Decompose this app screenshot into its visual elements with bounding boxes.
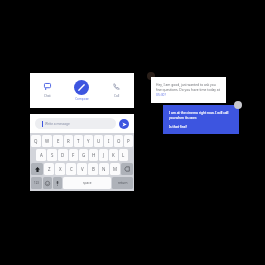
staticText: Z [48,166,51,172]
staticText: O [117,138,121,144]
button[interactable]: V [77,163,87,175]
staticText: V [81,166,84,172]
staticText: Call [114,94,120,98]
button[interactable]: 123 [31,177,42,189]
button[interactable]: Write a message [35,118,116,129]
button[interactable]: D [58,149,68,161]
button[interactable]: I [104,135,113,147]
staticText: 05:30? [156,92,166,96]
staticText: A [40,152,43,158]
button[interactable]: G [79,149,88,161]
staticText: Chat [44,94,51,98]
button[interactable]: W [42,135,52,147]
staticText: U [97,138,101,144]
staticText: R [67,138,70,144]
button[interactable]: M [110,163,120,175]
button[interactable]: R [64,135,73,147]
staticText: E [57,138,60,144]
staticText: Q [34,138,38,144]
staticText: B [92,166,95,172]
staticText: Hey, I am good, just wanted to ask you [156,82,216,86]
button[interactable]: Q [31,135,41,147]
staticText: I [108,138,110,144]
staticText: H [92,152,96,158]
staticText: you when its over. [169,115,197,119]
staticText: Compose [75,97,89,101]
button[interactable]: A [36,149,46,161]
button[interactable]: Send [119,119,129,129]
staticText: Is that fine? [169,124,187,128]
button[interactable]: Compose [64,73,99,108]
button[interactable]: Call [99,73,134,108]
button[interactable]: C [66,163,76,175]
button[interactable]: Y [84,135,93,147]
staticText: W [45,138,50,144]
button[interactable] [121,163,133,175]
button[interactable] [53,177,62,189]
button[interactable]: P [124,135,133,147]
button[interactable] [43,177,52,189]
staticText: few questions. Do you have time today at [156,87,220,91]
button[interactable]: N [99,163,109,175]
staticText: N [102,166,106,172]
staticText: Y [87,138,90,144]
staticText: F [72,152,75,158]
button[interactable]: B [88,163,98,175]
staticText: return [118,181,128,185]
button[interactable]: K [109,149,118,161]
button[interactable]: F [69,149,78,161]
button[interactable]: Hey, I am good, just wanted to ask you [151,77,226,103]
button[interactable]: return [112,177,133,189]
staticText: space [83,181,92,185]
other: Chat [44,83,51,90]
button[interactable]: I am at the cinema right now. I will cal… [163,105,239,134]
button[interactable]: Chat [30,73,64,108]
staticText: G [82,152,86,158]
staticText: I am at the cinema right now. I will cal… [169,110,229,114]
button[interactable]: L [119,149,128,161]
staticText: L [122,152,125,158]
staticText: X [59,166,62,172]
staticText: J [103,152,105,158]
staticText: D [61,152,65,158]
staticText: Write a message [45,122,70,126]
staticText: C [70,166,73,172]
staticText: K [112,152,115,158]
button[interactable]: X [55,163,65,175]
button[interactable]: T [74,135,83,147]
other: Call [113,83,120,90]
staticText: T [77,138,80,144]
staticText: P [127,138,130,144]
button[interactable]: O [114,135,123,147]
button[interactable]: H [89,149,98,161]
button[interactable]: U [94,135,103,147]
button[interactable]: Z [44,163,54,175]
button[interactable]: S [47,149,57,161]
staticText: M [113,166,117,172]
staticText: S [51,152,54,158]
button[interactable]: space [63,177,111,189]
button[interactable] [31,163,43,175]
button[interactable]: E [53,135,63,147]
button[interactable]: J [99,149,108,161]
staticText: 123 [34,181,39,185]
